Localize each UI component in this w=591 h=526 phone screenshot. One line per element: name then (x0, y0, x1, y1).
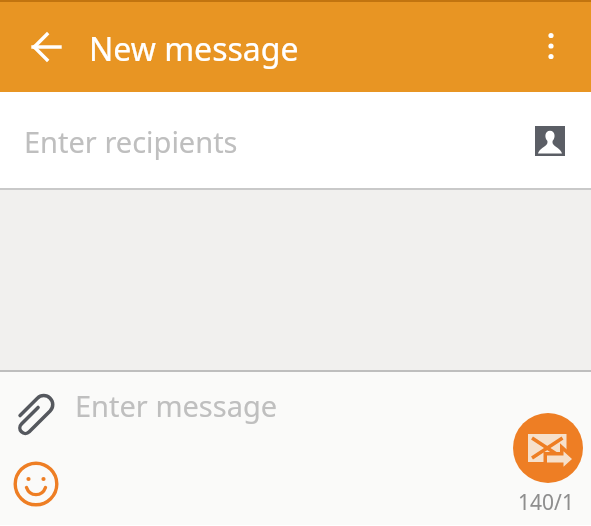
staticText: Enter recipients (24, 122, 238, 161)
staticText: Enter message (75, 386, 278, 425)
button[interactable]: Insert emoji (11, 459, 61, 509)
button[interactable]: Enter message (68, 376, 498, 436)
staticText: New message (89, 27, 299, 71)
button[interactable]: Enter recipients (0, 92, 591, 188)
button[interactable]: More options (527, 22, 575, 70)
button[interactable]: Attach file (16, 390, 56, 430)
button[interactable]: Choose contact (526, 117, 574, 165)
button[interactable]: Navigate up (23, 23, 71, 71)
button[interactable]: Send message (513, 413, 583, 483)
staticText: 140/1 (516, 488, 576, 517)
